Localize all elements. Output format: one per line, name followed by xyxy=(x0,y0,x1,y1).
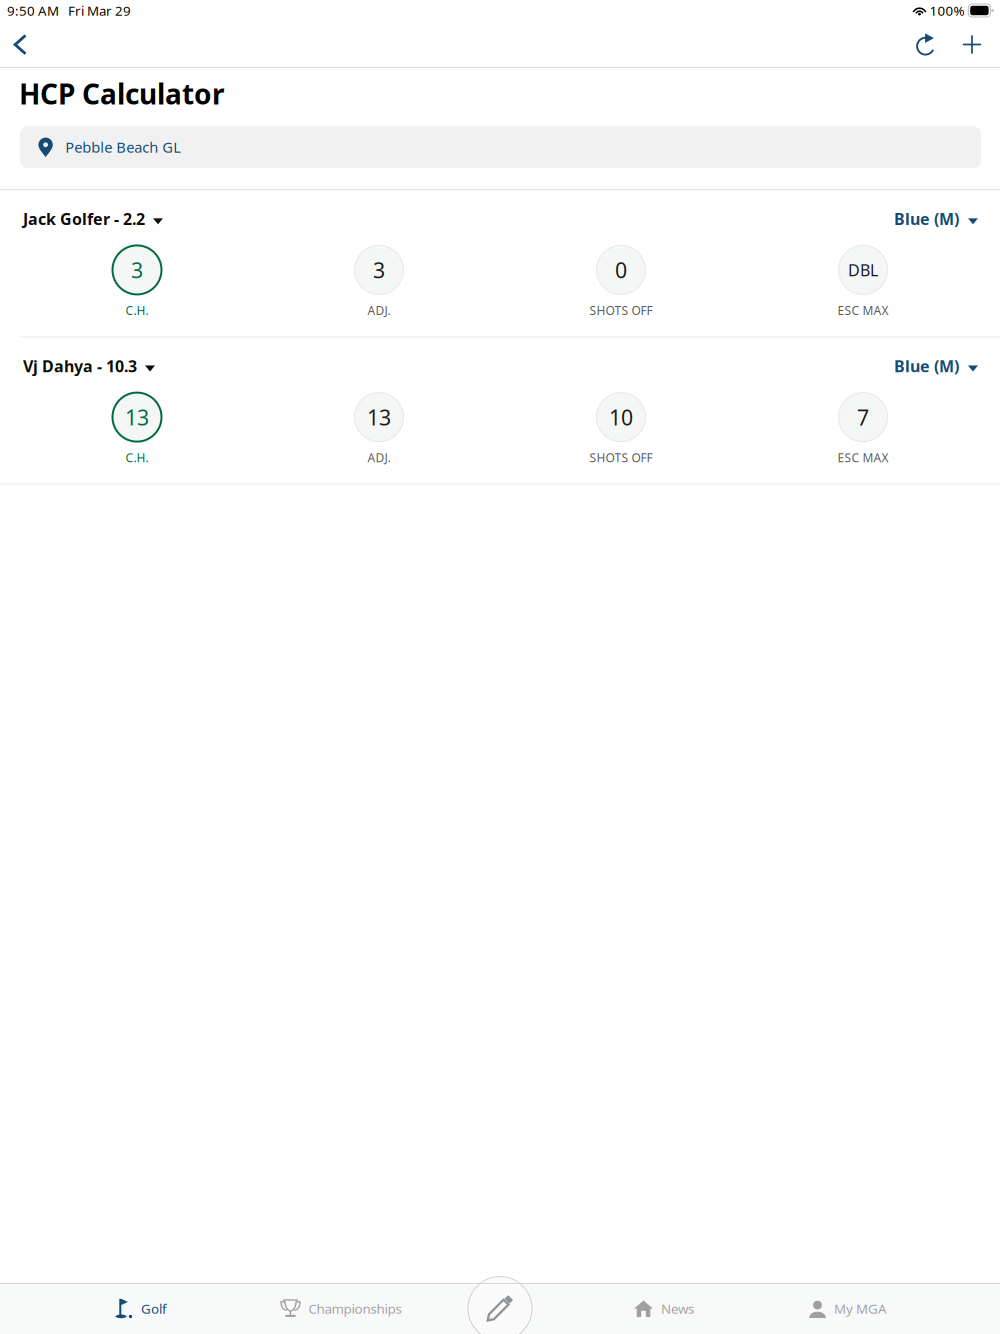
staticText: 13 xyxy=(125,403,149,431)
staticText: 0 xyxy=(615,256,627,284)
staticText: Blue (M) xyxy=(894,355,959,377)
button[interactable]: Refresh xyxy=(903,21,949,67)
staticText: News xyxy=(661,1300,694,1317)
staticText: Pebble Beach GL xyxy=(65,137,181,157)
staticText: 3 xyxy=(373,256,385,284)
staticText: Golf xyxy=(141,1300,167,1317)
staticText: SHOTS OFF xyxy=(589,302,652,318)
button[interactable]: Championships xyxy=(258,1283,423,1334)
staticText: ADJ. xyxy=(367,302,390,318)
staticText: C.H. xyxy=(125,450,148,465)
button[interactable]: Blue (M) xyxy=(894,351,978,381)
staticText: 13 xyxy=(367,403,391,431)
button[interactable]: My MGA xyxy=(787,1283,909,1334)
button[interactable]: Golf xyxy=(93,1283,189,1334)
staticText: 100% xyxy=(929,2,964,19)
button[interactable]: Jack Golfer - 2.2 xyxy=(23,204,163,233)
staticText: 9:50 AM xyxy=(7,2,59,19)
staticText: 7 xyxy=(857,403,869,431)
staticText: Blue (M) xyxy=(894,208,959,229)
staticText: ADJ. xyxy=(367,450,390,465)
staticText: ESC MAX xyxy=(837,450,888,465)
staticText: 3 xyxy=(131,256,143,284)
button[interactable]: Add xyxy=(949,21,995,67)
staticText: Vj Dahya - 10.3 xyxy=(23,355,137,377)
staticText: Championships xyxy=(308,1300,401,1317)
button[interactable]: Pebble Beach GL xyxy=(0,112,1000,168)
staticText: DBL xyxy=(848,259,878,280)
button[interactable]: Score xyxy=(468,1276,532,1334)
staticText: HCP Calculator xyxy=(19,75,225,112)
button[interactable]: News xyxy=(612,1283,716,1334)
staticText: Fri Mar 29 xyxy=(68,2,131,19)
staticText: SHOTS OFF xyxy=(589,450,652,465)
button[interactable]: Vj Dahya - 10.3 xyxy=(23,351,155,381)
button[interactable]: Back xyxy=(0,21,41,67)
staticText: Jack Golfer - 2.2 xyxy=(23,208,145,229)
button[interactable]: Blue (M) xyxy=(894,204,978,233)
staticText: ESC MAX xyxy=(837,302,888,318)
staticText: 10 xyxy=(609,403,633,431)
staticText: C.H. xyxy=(125,302,148,318)
staticText: My MGA xyxy=(834,1300,887,1317)
